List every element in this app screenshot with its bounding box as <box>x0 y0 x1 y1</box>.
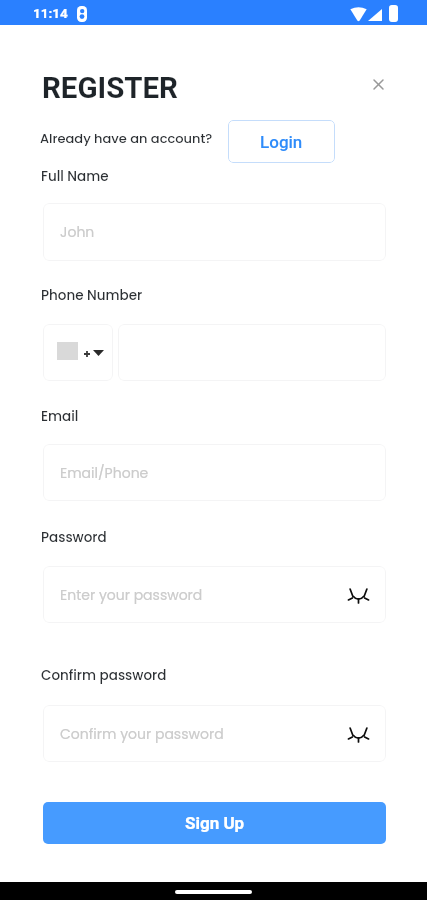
staticText: Password <box>41 528 107 547</box>
staticText: Confirm your password <box>60 724 224 744</box>
button[interactable]: John <box>43 203 386 261</box>
staticText: Sign Up <box>185 813 245 833</box>
staticText: Login <box>260 132 303 152</box>
button[interactable]: Select country code <box>43 324 113 381</box>
button[interactable]: Sign Up <box>43 802 386 844</box>
staticText: Phone Number <box>41 286 143 305</box>
staticText: 11:14 <box>33 5 68 21</box>
staticText: Full Name <box>41 167 109 186</box>
staticText: Email <box>41 407 79 426</box>
staticText: REGISTER <box>42 71 178 106</box>
button[interactable]: Confirm your password <box>43 705 386 762</box>
button[interactable]: Close <box>360 66 396 102</box>
staticText: Confirm password <box>41 666 167 685</box>
staticText: Enter your password <box>60 585 203 605</box>
button[interactable]: Email/Phone <box>43 444 386 501</box>
button[interactable]: Login <box>228 120 335 163</box>
button[interactable]: Enter your password <box>43 566 386 623</box>
staticText: Email/Phone <box>60 463 149 483</box>
staticText: Already have an account? <box>40 129 213 147</box>
staticText: John <box>60 222 95 242</box>
